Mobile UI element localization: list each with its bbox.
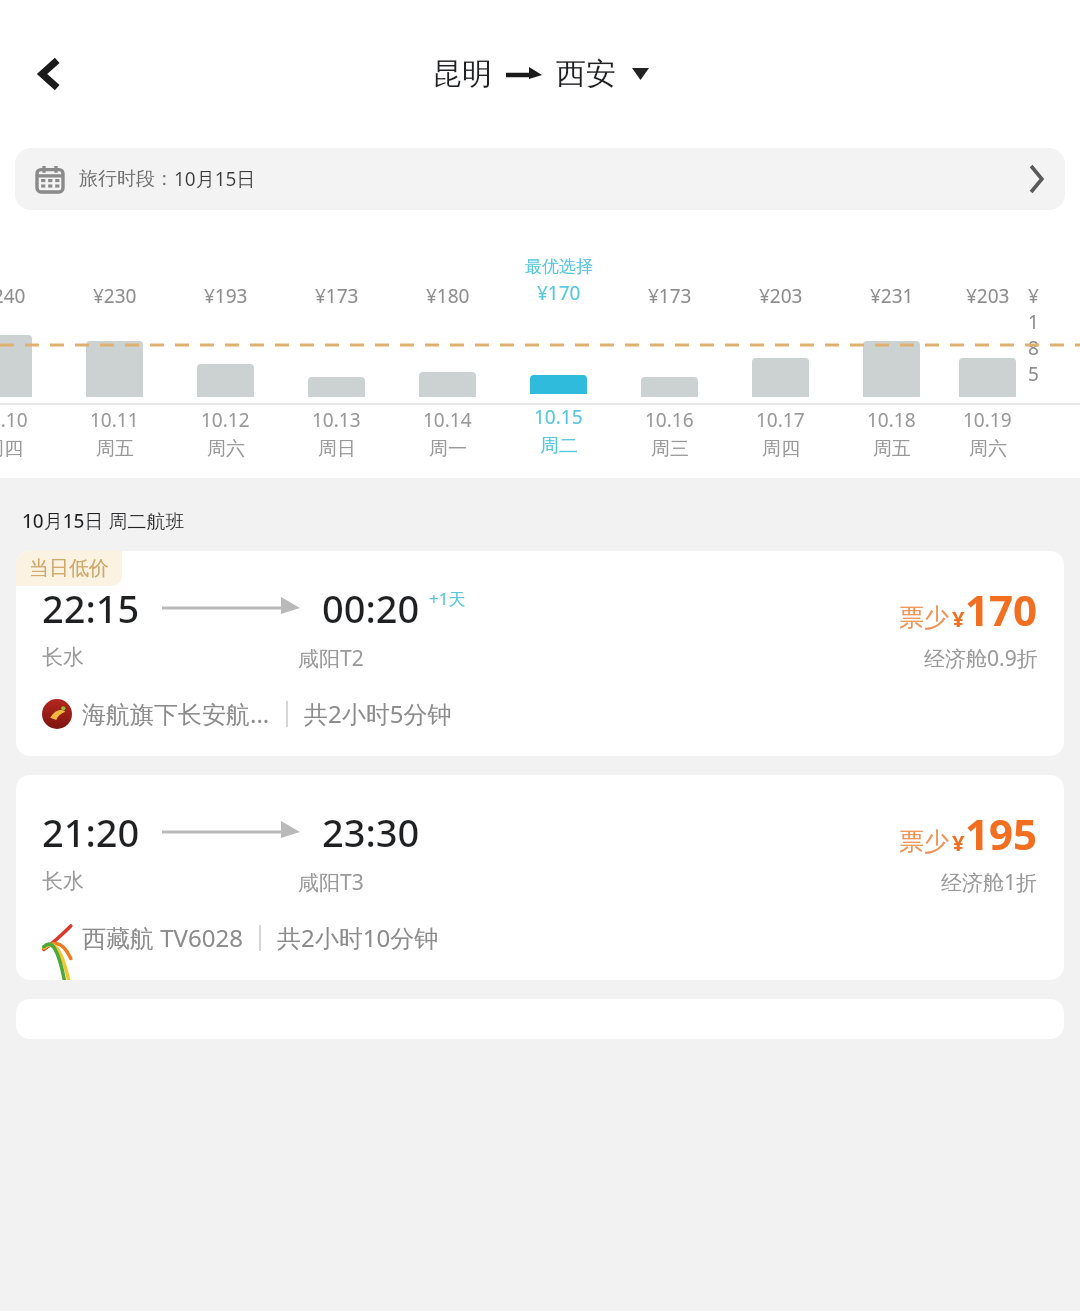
staticText: 周六 [969,437,1007,461]
button[interactable]: 最优选择 [503,256,614,464]
staticText: 10.13 [312,407,361,433]
staticText: ¥203 [759,283,803,309]
button[interactable]: ¥173 [281,256,392,464]
staticText: 旅行时段： [79,167,174,191]
staticText: 咸阳T3 [298,868,364,897]
button[interactable]: ¥180 [392,256,503,464]
staticText: 10月15日 周二航班 [22,508,185,534]
button[interactable]: ¥193 [170,256,281,464]
staticText: ¥230 [93,283,137,309]
staticText: 22:15 [42,582,140,634]
staticText: 10.11 [90,407,139,433]
staticText: ¥173 [315,283,359,309]
staticText: 10.19 [963,407,1012,433]
staticText: 10.16 [645,407,694,433]
staticText: ¥ [952,603,965,633]
staticText: 最优选择 [525,256,593,277]
staticText: 海航旗下长安航... [82,697,270,730]
staticText: 咸阳T2 [298,644,364,673]
staticText: 昆明 [432,55,492,93]
button[interactable]: ¥240 [0,256,59,464]
button[interactable]: 22:15 [16,551,1064,756]
staticText: ¥231 [870,283,914,309]
button[interactable]: 旅行时段： [15,148,1065,210]
staticText: 195 [965,805,1038,862]
staticText: 21:20 [42,806,140,858]
staticText: 10.17 [756,407,805,433]
staticText: 00:20 [322,582,420,634]
staticText: ¥203 [966,283,1010,309]
staticText: 170 [965,581,1038,638]
staticText: 当日低价 [29,556,109,581]
button[interactable]: ¥230 [59,256,170,464]
staticText: 10月15日 [174,166,256,192]
staticText: 共2小时10分钟 [277,921,439,954]
staticText: ¥180 [426,283,470,309]
staticText: 票少 [899,602,949,633]
staticText: ¥240 [0,283,26,309]
staticText: 10.14 [423,407,472,433]
staticText: ¥170 [537,280,581,306]
button[interactable]: ¥231 [836,256,947,464]
staticText: 10.18 [867,407,916,433]
button[interactable]: ¥203 [947,256,1028,464]
staticText: 周日 [318,437,356,461]
button[interactable]: Back [22,46,78,102]
staticText: 西安 [556,55,616,93]
staticText: 周四 [0,437,23,461]
staticText: 长水 [42,868,84,894]
staticText: ¥ [952,827,965,857]
button[interactable]: 21:20 [16,775,1064,980]
staticText: 周二 [540,434,578,458]
staticText: 周五 [873,437,911,461]
staticText: 周三 [651,437,689,461]
button[interactable]: ¥203 [725,256,836,464]
button[interactable]: 昆明 [432,55,649,93]
staticText: ¥193 [204,283,248,309]
staticText: 10.12 [201,407,250,433]
staticText: 周五 [96,437,134,461]
staticText: 经济舱1折 [941,868,1038,897]
button[interactable]: ¥173 [614,256,725,464]
staticText: 周四 [762,437,800,461]
staticText: 周一 [429,437,467,461]
staticText: 经济舱0.9折 [924,644,1038,673]
staticText: 共2小时5分钟 [304,697,452,730]
staticText: 10.15 [534,404,583,430]
staticText: 23:30 [322,806,420,858]
staticText: ¥173 [648,283,692,309]
staticText: 周六 [207,437,245,461]
staticText: 西藏航 TV6028 [82,921,243,954]
staticText: 10.10 [0,407,28,433]
staticText: 票少 [899,826,949,857]
staticText: 长水 [42,644,84,670]
staticText: +1天 [429,587,466,610]
